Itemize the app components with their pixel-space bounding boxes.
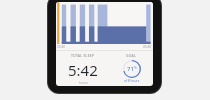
staticText: 71 (127, 65, 134, 73)
staticText: 06:40 (143, 45, 152, 49)
staticText: hours (79, 81, 88, 85)
staticText: of 8 hours (124, 79, 140, 83)
staticText: 20:40 (57, 45, 66, 49)
button[interactable]: Sleep stages chart (56, 2, 153, 50)
button[interactable]: TOTAL SLEEP (56, 53, 110, 86)
staticText: % (134, 65, 137, 70)
staticText: 5:42 (68, 60, 98, 80)
other: Sleep stages chart (56, 2, 153, 44)
staticText: GOAL (126, 53, 137, 58)
staticText: TOTAL SLEEP (71, 53, 95, 58)
button[interactable]: GOAL (110, 53, 153, 86)
